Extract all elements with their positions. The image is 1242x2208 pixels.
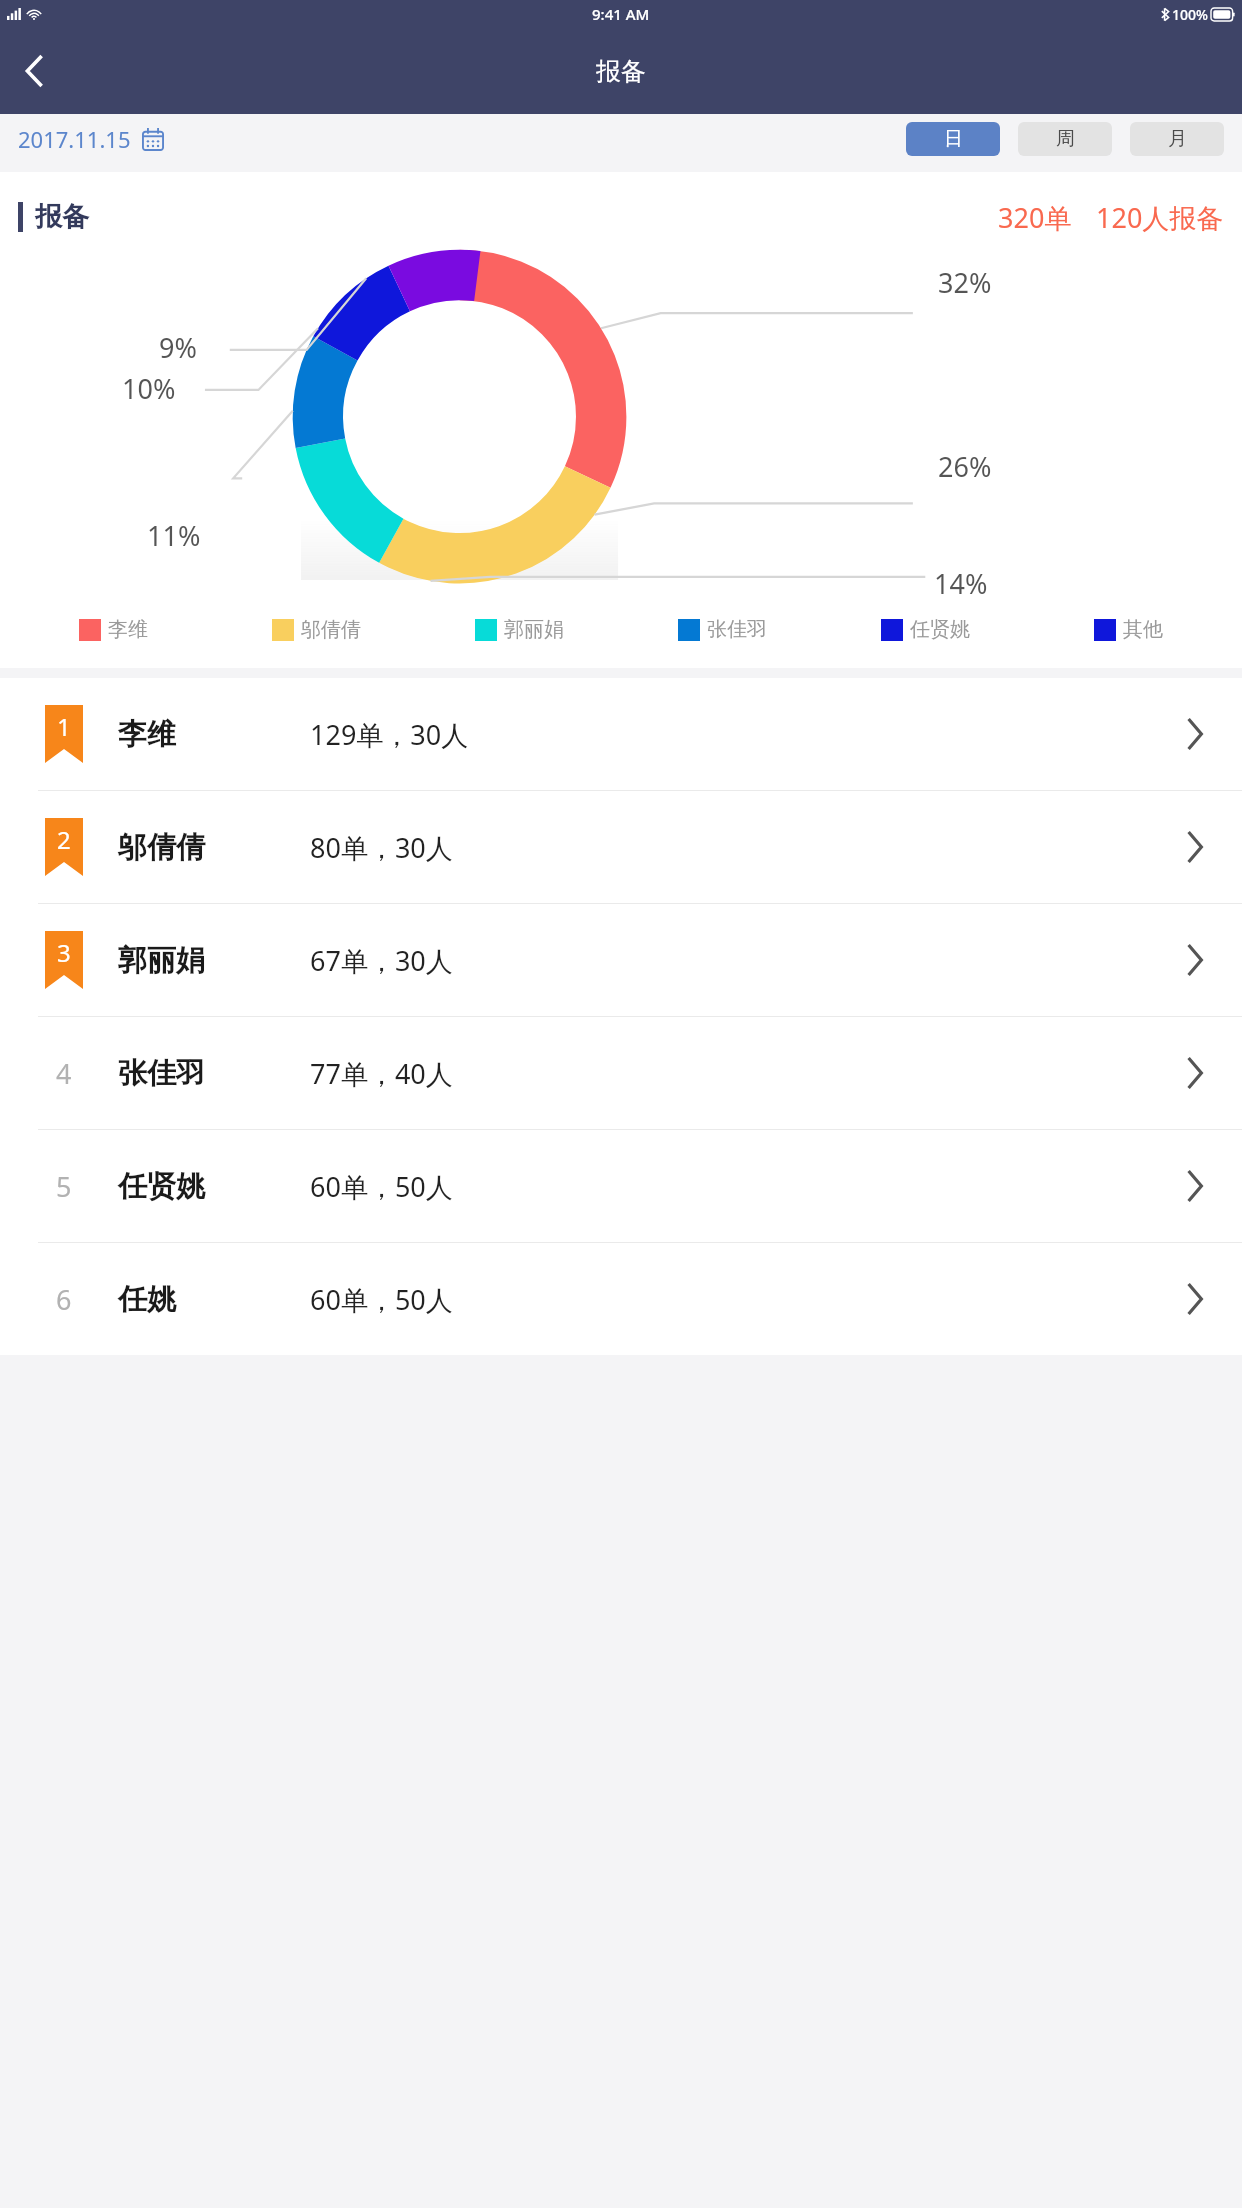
button[interactable]: 张佳羽 (621, 617, 824, 642)
staticText: 320单 (998, 199, 1072, 236)
other: View details (1160, 1038, 1230, 1108)
staticText: 77单，40人 (310, 1055, 453, 1092)
staticText: 张佳羽 (707, 617, 767, 642)
button[interactable]: 其他 (1027, 617, 1230, 642)
staticText: 3 (57, 936, 71, 969)
other: View details (1160, 1264, 1230, 1334)
staticText: 邬倩倩 (118, 829, 205, 866)
button[interactable]: 4 (0, 1017, 1242, 1129)
staticText: 9% (159, 329, 197, 366)
staticText: 李维 (118, 716, 176, 753)
staticText: 郭丽娟 (504, 617, 564, 642)
staticText: 32% (938, 264, 992, 301)
staticText: 129单，30人 (310, 716, 469, 753)
staticText: 60单，50人 (310, 1281, 453, 1318)
staticText: 任贤姚 (118, 1168, 205, 1205)
staticText: 120人报备 (1096, 199, 1224, 236)
button[interactable]: 任贤姚 (824, 617, 1027, 642)
staticText: 1 (57, 710, 71, 743)
staticText: 邬倩倩 (301, 617, 361, 642)
staticText: 60单，50人 (310, 1168, 453, 1205)
staticText: 周 (1056, 127, 1075, 151)
staticText: 11% (147, 517, 201, 554)
staticText: 2 (57, 823, 71, 856)
staticText: 9:41 AM (592, 4, 650, 24)
other: View details (1160, 699, 1230, 769)
button[interactable]: 日 (906, 122, 1000, 156)
staticText: 100% (1172, 5, 1208, 24)
button[interactable]: 周 (1018, 122, 1112, 156)
button[interactable]: 3 (0, 904, 1242, 1016)
staticText: 14% (934, 565, 988, 602)
staticText: 10% (122, 370, 176, 407)
staticText: 报备 (35, 200, 89, 234)
other: View details (1160, 925, 1230, 995)
staticText: 2017.11.15 (18, 124, 131, 154)
staticText: 月 (1168, 127, 1187, 151)
staticText: 郭丽娟 (118, 942, 205, 979)
button[interactable]: 2017.11.15 (18, 124, 164, 154)
other: View details (1160, 1151, 1230, 1221)
staticText: 报备 (596, 56, 646, 87)
button[interactable]: 郭丽娟 (418, 617, 621, 642)
button[interactable]: 1 (0, 678, 1242, 790)
button[interactable]: 5 (0, 1130, 1242, 1242)
button[interactable]: 6 (0, 1243, 1242, 1355)
other: View details (1160, 812, 1230, 882)
staticText: 任姚 (118, 1281, 176, 1318)
staticText: 5 (56, 1168, 72, 1205)
button[interactable]: 2 (0, 791, 1242, 903)
button[interactable]: Back (6, 43, 62, 99)
staticText: 67单，30人 (310, 942, 453, 979)
staticText: 6 (56, 1281, 72, 1318)
button[interactable]: 邬倩倩 (215, 617, 418, 642)
staticText: 4 (56, 1055, 72, 1092)
staticText: 26% (938, 448, 992, 485)
button[interactable]: 李维 (12, 617, 215, 642)
button[interactable]: 月 (1130, 122, 1224, 156)
staticText: 张佳羽 (118, 1055, 205, 1092)
staticText: 任贤姚 (910, 617, 970, 642)
staticText: 80单，30人 (310, 829, 453, 866)
staticText: 李维 (108, 617, 148, 642)
staticText: 日 (944, 127, 963, 151)
staticText: 其他 (1123, 617, 1163, 642)
